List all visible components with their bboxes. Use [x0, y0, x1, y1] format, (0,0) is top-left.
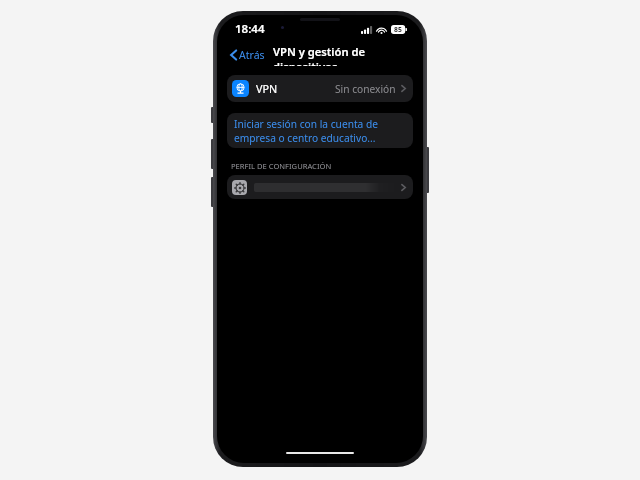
staticText: Sin conexión: [335, 82, 396, 96]
staticText: PERFIL DE CONFIGURACIÓN: [231, 161, 332, 171]
staticText: 18:44: [235, 21, 265, 37]
button[interactable]: VPN: [227, 75, 413, 102]
staticText: VPN y gestión de dispositivos: [273, 44, 413, 66]
button[interactable]: Atrás: [227, 46, 268, 64]
button[interactable]: Perfil de configuración: [227, 175, 413, 199]
button[interactable]: Iniciar sesión con la cuenta de empresa …: [227, 113, 413, 148]
staticText: VPN: [256, 81, 278, 96]
staticText: Iniciar sesión con la cuenta de empresa …: [234, 117, 406, 145]
staticText: 85: [394, 25, 402, 34]
staticText: Atrás: [239, 48, 265, 62]
